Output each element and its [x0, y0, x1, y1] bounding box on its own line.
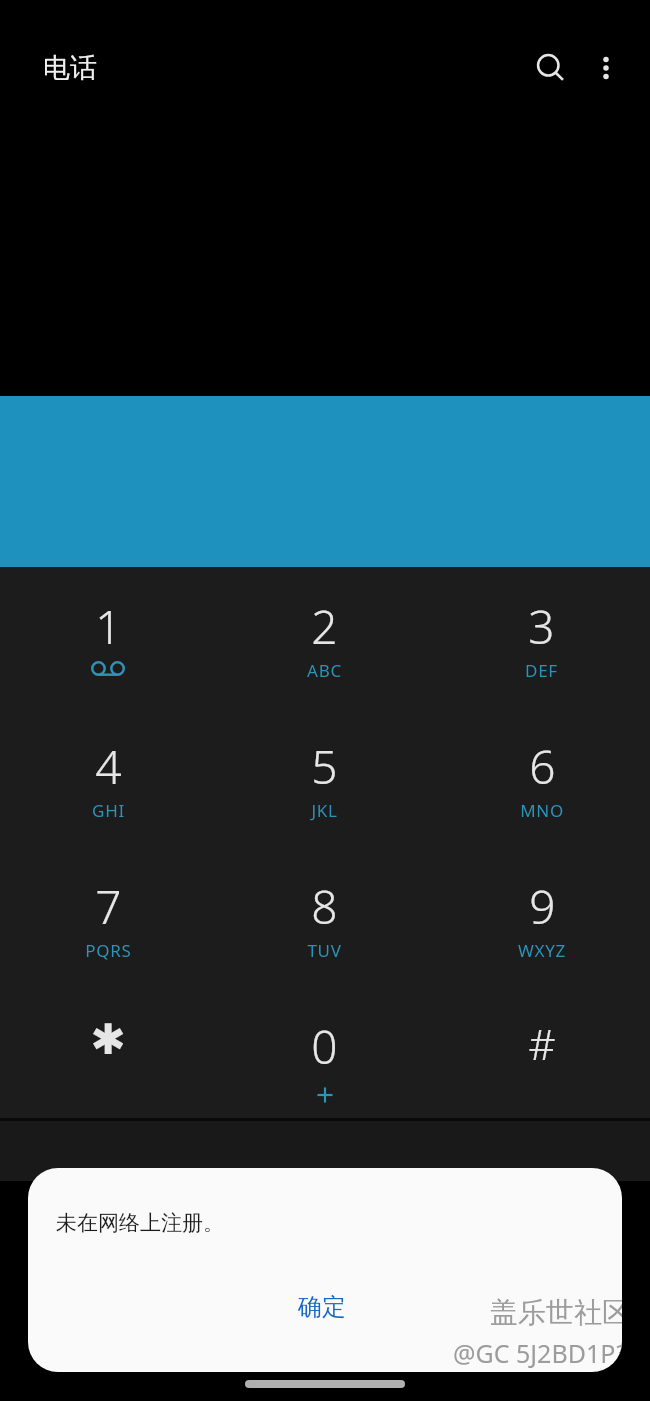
button[interactable]: #: [433, 1015, 650, 1111]
staticText: PQRS: [85, 939, 132, 962]
button[interactable]: 1: [0, 595, 216, 691]
button[interactable]: More options: [580, 42, 632, 94]
button[interactable]: 0: [216, 1015, 433, 1111]
staticText: GHI: [92, 799, 125, 822]
staticText: 确定: [298, 1292, 346, 1322]
staticText: 7: [95, 875, 122, 938]
button[interactable]: 9: [433, 875, 650, 971]
staticText: WXYZ: [518, 939, 566, 962]
staticText: 6: [529, 735, 556, 798]
staticText: 0: [311, 1015, 338, 1078]
button[interactable]: 3: [433, 595, 650, 691]
staticText: TUV: [307, 939, 342, 962]
button[interactable]: 7: [0, 875, 216, 971]
staticText: ✱: [90, 1015, 126, 1064]
button[interactable]: 6: [433, 735, 650, 831]
staticText: 8: [311, 875, 338, 938]
button[interactable]: 8: [216, 875, 433, 971]
staticText: 4: [95, 735, 122, 798]
button[interactable]: 4: [0, 735, 216, 831]
button[interactable]: 确定: [278, 1284, 366, 1330]
staticText: 电话: [43, 51, 97, 85]
staticText: MNO: [520, 799, 564, 822]
staticText: 1: [95, 595, 122, 658]
staticText: 未在网络上注册。: [56, 1210, 224, 1236]
button[interactable]: ✱: [0, 1015, 216, 1111]
staticText: 3: [528, 595, 555, 658]
staticText: 2: [311, 595, 338, 658]
staticText: 5: [311, 735, 338, 798]
button[interactable]: 5: [216, 735, 433, 831]
button[interactable]: Search: [522, 39, 580, 97]
staticText: 9: [529, 875, 556, 938]
staticText: DEF: [525, 659, 558, 682]
staticText: ABC: [307, 659, 342, 682]
staticText: JKL: [311, 799, 338, 822]
staticText: 盖乐世社区: [490, 1295, 622, 1330]
button[interactable]: 2: [216, 595, 433, 691]
staticText: @GC 5J2BD1P3: [453, 1336, 622, 1370]
staticText: #: [528, 1015, 556, 1072]
